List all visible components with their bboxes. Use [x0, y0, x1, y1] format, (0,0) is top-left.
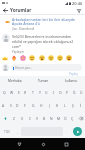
button[interactable]: W [8, 87, 15, 98]
button[interactable]: Reaction [48, 55, 54, 61]
button[interactable]: Ğ [71, 87, 78, 98]
staticText: Yorum yaz… [15, 66, 33, 70]
staticText: Y [39, 90, 41, 95]
button[interactable]: Recents [61, 139, 71, 149]
button[interactable]: Y [36, 87, 43, 98]
staticText: 20:46 [72, 1, 83, 6]
button[interactable]: E [15, 87, 22, 98]
staticText: F [24, 103, 26, 108]
button[interactable]: Q [0, 87, 8, 98]
button[interactable]: Shift [0, 113, 10, 124]
staticText: H [40, 103, 43, 108]
button[interactable]: H [37, 100, 45, 111]
button[interactable]: R [22, 87, 29, 98]
button[interactable]: Tuman [29, 76, 57, 86]
button[interactable]: Ö [62, 113, 69, 124]
staticText: Arkadaşlarınızdan biri bir ileri düzeyde… [12, 17, 82, 26]
staticText: Yorumlar [10, 7, 32, 13]
staticText: N [50, 116, 53, 121]
staticText: C [29, 116, 32, 121]
staticText: İ [80, 103, 82, 108]
button[interactable]: , [14, 126, 21, 137]
staticText: G [32, 103, 35, 108]
staticText: J [49, 103, 50, 108]
button[interactable]: Filter [75, 7, 82, 14]
button[interactable]: Ç [69, 113, 76, 124]
button[interactable]: Reaction [66, 55, 72, 61]
button[interactable]: Paylaşım [12, 50, 25, 54]
button[interactable]: K [53, 100, 61, 111]
button[interactable]: Merhaba [0, 76, 29, 86]
button[interactable]: Ü [78, 87, 85, 98]
button[interactable]: I [50, 87, 57, 98]
staticText: Z [13, 116, 15, 121]
button[interactable]: P [64, 87, 71, 98]
button[interactable]: G [29, 100, 37, 111]
staticText: U [45, 90, 48, 95]
button[interactable]: Ş [69, 100, 77, 111]
staticText: W [10, 90, 14, 95]
button[interactable]: X [18, 113, 26, 124]
button[interactable]: T [29, 87, 36, 98]
staticText: Ş [72, 103, 74, 108]
staticText: . [66, 130, 67, 134]
staticText: S [10, 103, 12, 108]
button[interactable]: C [26, 113, 34, 124]
button[interactable]: Backspace [76, 113, 85, 124]
button[interactable]: Reaction [29, 55, 35, 61]
button[interactable]: O [57, 87, 64, 98]
staticText: K [56, 103, 59, 108]
staticText: Ü [80, 90, 83, 95]
staticText: D [16, 103, 19, 108]
staticText: I [53, 90, 55, 95]
staticText: A [2, 103, 5, 108]
staticText: E [18, 90, 20, 95]
button[interactable]: J [45, 100, 53, 111]
button[interactable]: Yorum yaz… [13, 64, 80, 71]
button[interactable]: Reaction [2, 55, 8, 61]
button[interactable]: Send [73, 127, 82, 136]
button[interactable]: M [55, 113, 62, 124]
staticText: X [21, 116, 23, 121]
button[interactable]: A [0, 100, 7, 111]
staticText: Veli233 Benzerlerini incelemesinden etki… [12, 34, 82, 49]
staticText: Ğ [73, 90, 76, 95]
staticText: ?123 [4, 130, 10, 134]
button[interactable]: Back [14, 139, 24, 149]
button[interactable]: F [21, 100, 29, 111]
staticText: 2sa · Düzenlendi [12, 27, 35, 31]
staticText: Merhaba [8, 79, 22, 83]
staticText: O [59, 90, 62, 95]
staticText: Q [3, 90, 6, 95]
button[interactable]: U [43, 87, 50, 98]
staticText: kullanıcı [65, 79, 78, 83]
staticText: V [36, 116, 39, 121]
staticText: , [17, 130, 18, 134]
button[interactable]: Reaction [20, 55, 26, 61]
button[interactable]: N [48, 113, 55, 124]
button[interactable]: kullanıcı [57, 76, 85, 86]
button[interactable]: V [34, 113, 41, 124]
button[interactable]: L [61, 100, 69, 111]
button[interactable]: S [7, 100, 14, 111]
button[interactable]: Back [2, 7, 9, 14]
button[interactable]: Reaction [11, 55, 17, 61]
staticText: Ö [64, 116, 67, 121]
staticText: B [43, 116, 46, 121]
button[interactable]: İ [77, 100, 85, 111]
staticText: M [57, 116, 61, 121]
button[interactable]: D [14, 100, 21, 111]
staticText: Tuman [38, 79, 49, 83]
staticText: L [64, 103, 66, 108]
button[interactable]: Paylaş [69, 72, 78, 76]
button[interactable]: Reaction [57, 55, 63, 61]
staticText: T [32, 90, 34, 95]
button[interactable]: B [41, 113, 48, 124]
button[interactable]: ?123 [0, 126, 14, 137]
button[interactable]: Home [38, 139, 48, 149]
button[interactable]: Z [10, 113, 18, 124]
staticText: R [24, 90, 27, 95]
button[interactable]: Reaction [39, 55, 45, 61]
